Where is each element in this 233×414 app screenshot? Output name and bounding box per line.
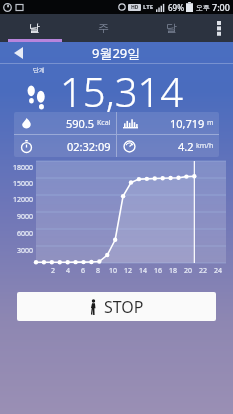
staticText: 22 [199, 266, 208, 276]
button[interactable]: 10,719 [117, 112, 219, 134]
staticText: 6 [81, 266, 86, 276]
button[interactable]: 02:32:09 [14, 135, 116, 157]
button[interactable]: 달 [137, 14, 205, 42]
staticText: 9000 [16, 212, 33, 222]
button[interactable]: 주 [69, 14, 137, 42]
staticText: m [207, 118, 214, 128]
staticText: 15000 [12, 179, 33, 189]
staticText: 오후 [196, 3, 210, 12]
button[interactable]: More options [205, 14, 233, 42]
staticText: km/h [196, 141, 214, 151]
staticText: 4.2 [178, 139, 194, 154]
staticText: 69% [168, 2, 184, 13]
staticText: 7:00 [212, 1, 230, 13]
staticText: 6000 [16, 229, 33, 239]
staticText: 12000 [12, 195, 33, 205]
staticText: 10,719 [170, 116, 205, 131]
staticText: STOP [104, 296, 144, 318]
staticText: Kcal [97, 118, 111, 128]
staticText: 18000 [12, 163, 33, 173]
staticText: 12 [124, 266, 133, 276]
staticText: 날 [29, 21, 40, 35]
staticText: HD [131, 4, 139, 11]
staticText: LTE [143, 3, 154, 11]
staticText: 02:32:09 [67, 139, 111, 154]
button[interactable]: Previous day [0, 42, 36, 64]
staticText: 2 [51, 266, 56, 276]
staticText: 주 [98, 21, 109, 35]
staticText: 24 [214, 266, 223, 276]
staticText: 16 [154, 266, 163, 276]
staticText: 15,314 [60, 64, 184, 112]
staticText: 18 [169, 266, 178, 276]
staticText: 4 [66, 266, 71, 276]
staticText: 20 [184, 266, 193, 276]
staticText: 590.5 [66, 116, 95, 131]
staticText: 달 [166, 21, 177, 35]
staticText: 10 [109, 266, 118, 276]
staticText: 14 [139, 266, 148, 276]
staticText: 8 [96, 266, 101, 276]
staticText: 9월29일 [92, 44, 141, 62]
button[interactable]: 날 [0, 14, 69, 42]
button[interactable]: 590.5 [14, 112, 116, 134]
button[interactable]: STOP [17, 292, 216, 321]
staticText: 3000 [16, 246, 33, 256]
button[interactable]: 4.2 [117, 135, 219, 157]
staticText: 단계 [33, 66, 45, 74]
